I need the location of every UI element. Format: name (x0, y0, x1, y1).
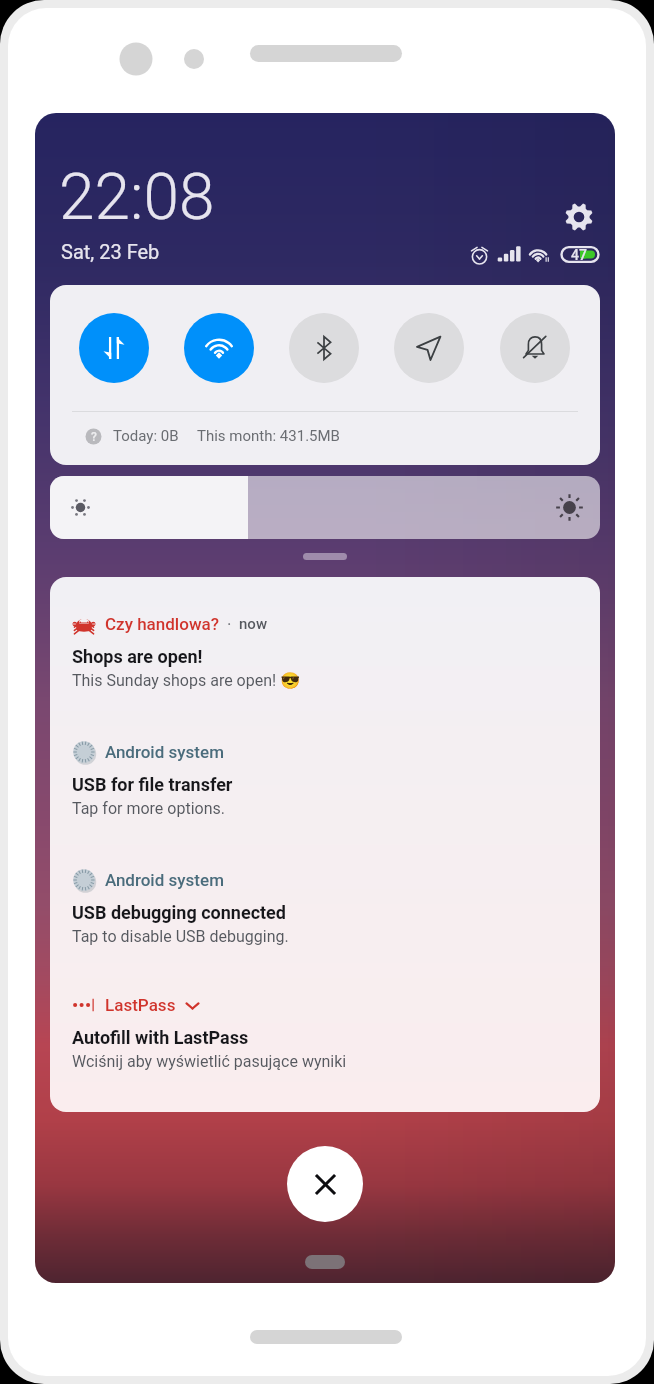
button[interactable]: Brightness (50, 476, 600, 539)
button[interactable]: Quick setting toggle (394, 313, 464, 383)
button[interactable]: Android system (50, 867, 600, 946)
staticText: This Sunday shops are open! 😎 (72, 671, 301, 690)
staticText: Czy handlowa? (105, 614, 220, 634)
staticText: · (227, 614, 232, 634)
staticText: Sat, 23 Feb (61, 240, 160, 263)
button[interactable]: Quick setting toggle (500, 313, 570, 383)
staticText: Today: 0B (113, 427, 179, 445)
staticText: Autofill with LastPass (72, 1027, 249, 1048)
button[interactable]: Close notifications (287, 1146, 363, 1222)
staticText: This month: 431.5MB (197, 427, 340, 445)
staticText: Wciśnij aby wyświetlić pasujące wyniki (72, 1052, 347, 1071)
staticText: 22:08 (59, 160, 215, 235)
staticText: 47 (571, 247, 587, 263)
staticText: Tap to disable USB debugging. (72, 927, 289, 946)
staticText: now (239, 615, 268, 633)
button[interactable]: Quick setting toggle (79, 313, 149, 383)
staticText: USB for file transfer (72, 774, 233, 795)
button[interactable]: Czy handlowa? (50, 611, 600, 690)
button[interactable]: Android system (50, 739, 600, 818)
button[interactable]: LastPass (50, 992, 600, 1071)
staticText: Shops are open! (72, 646, 203, 667)
staticText: LastPass (105, 995, 176, 1015)
button[interactable]: Settings (558, 196, 600, 238)
button[interactable]: Quick setting toggle (289, 313, 359, 383)
staticText: ? (91, 430, 97, 444)
staticText: USB debugging connected (72, 902, 286, 923)
staticText: Tap for more options. (72, 799, 225, 818)
button[interactable]: Quick setting toggle (184, 313, 254, 383)
staticText: Android system (105, 870, 224, 890)
staticText: Android system (105, 742, 224, 762)
